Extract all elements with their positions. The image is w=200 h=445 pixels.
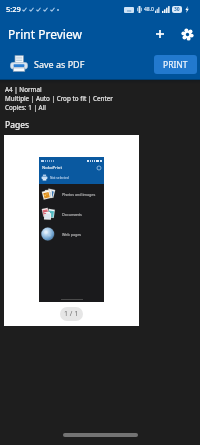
staticText: 5:29 — [6, 4, 21, 14]
staticText: A4 | Normal — [5, 85, 42, 94]
staticText: Pages — [5, 119, 30, 131]
staticText: Copies: 1 | All — [5, 103, 46, 112]
staticText: PRINT — [163, 59, 188, 71]
staticText: Not selected — [50, 176, 69, 180]
button[interactable]: Photos and images — [39, 184, 104, 204]
staticText: Multiple | Auto | Crop to fit | Center — [5, 94, 113, 103]
button[interactable]: Save as PDF — [0, 48, 154, 80]
staticText: vo — [127, 8, 132, 13]
staticText: 1 / 1 — [64, 309, 79, 319]
staticText: NokoPrint — [42, 165, 62, 171]
staticText: Print Preview — [8, 26, 82, 42]
staticText: Web pages — [62, 232, 82, 237]
button[interactable]: Add printer — [147, 21, 173, 47]
staticText: Save as PDF — [34, 58, 85, 70]
staticText: 48.0 — [144, 6, 154, 13]
staticText: Documents — [62, 212, 82, 217]
staticText: Photos and images — [62, 192, 96, 197]
staticText: 30 — [174, 6, 180, 13]
button[interactable]: Documents — [39, 204, 104, 224]
button[interactable]: Web pages — [39, 224, 104, 244]
button[interactable]: Settings — [174, 21, 200, 47]
button[interactable]: PRINT — [154, 55, 197, 74]
